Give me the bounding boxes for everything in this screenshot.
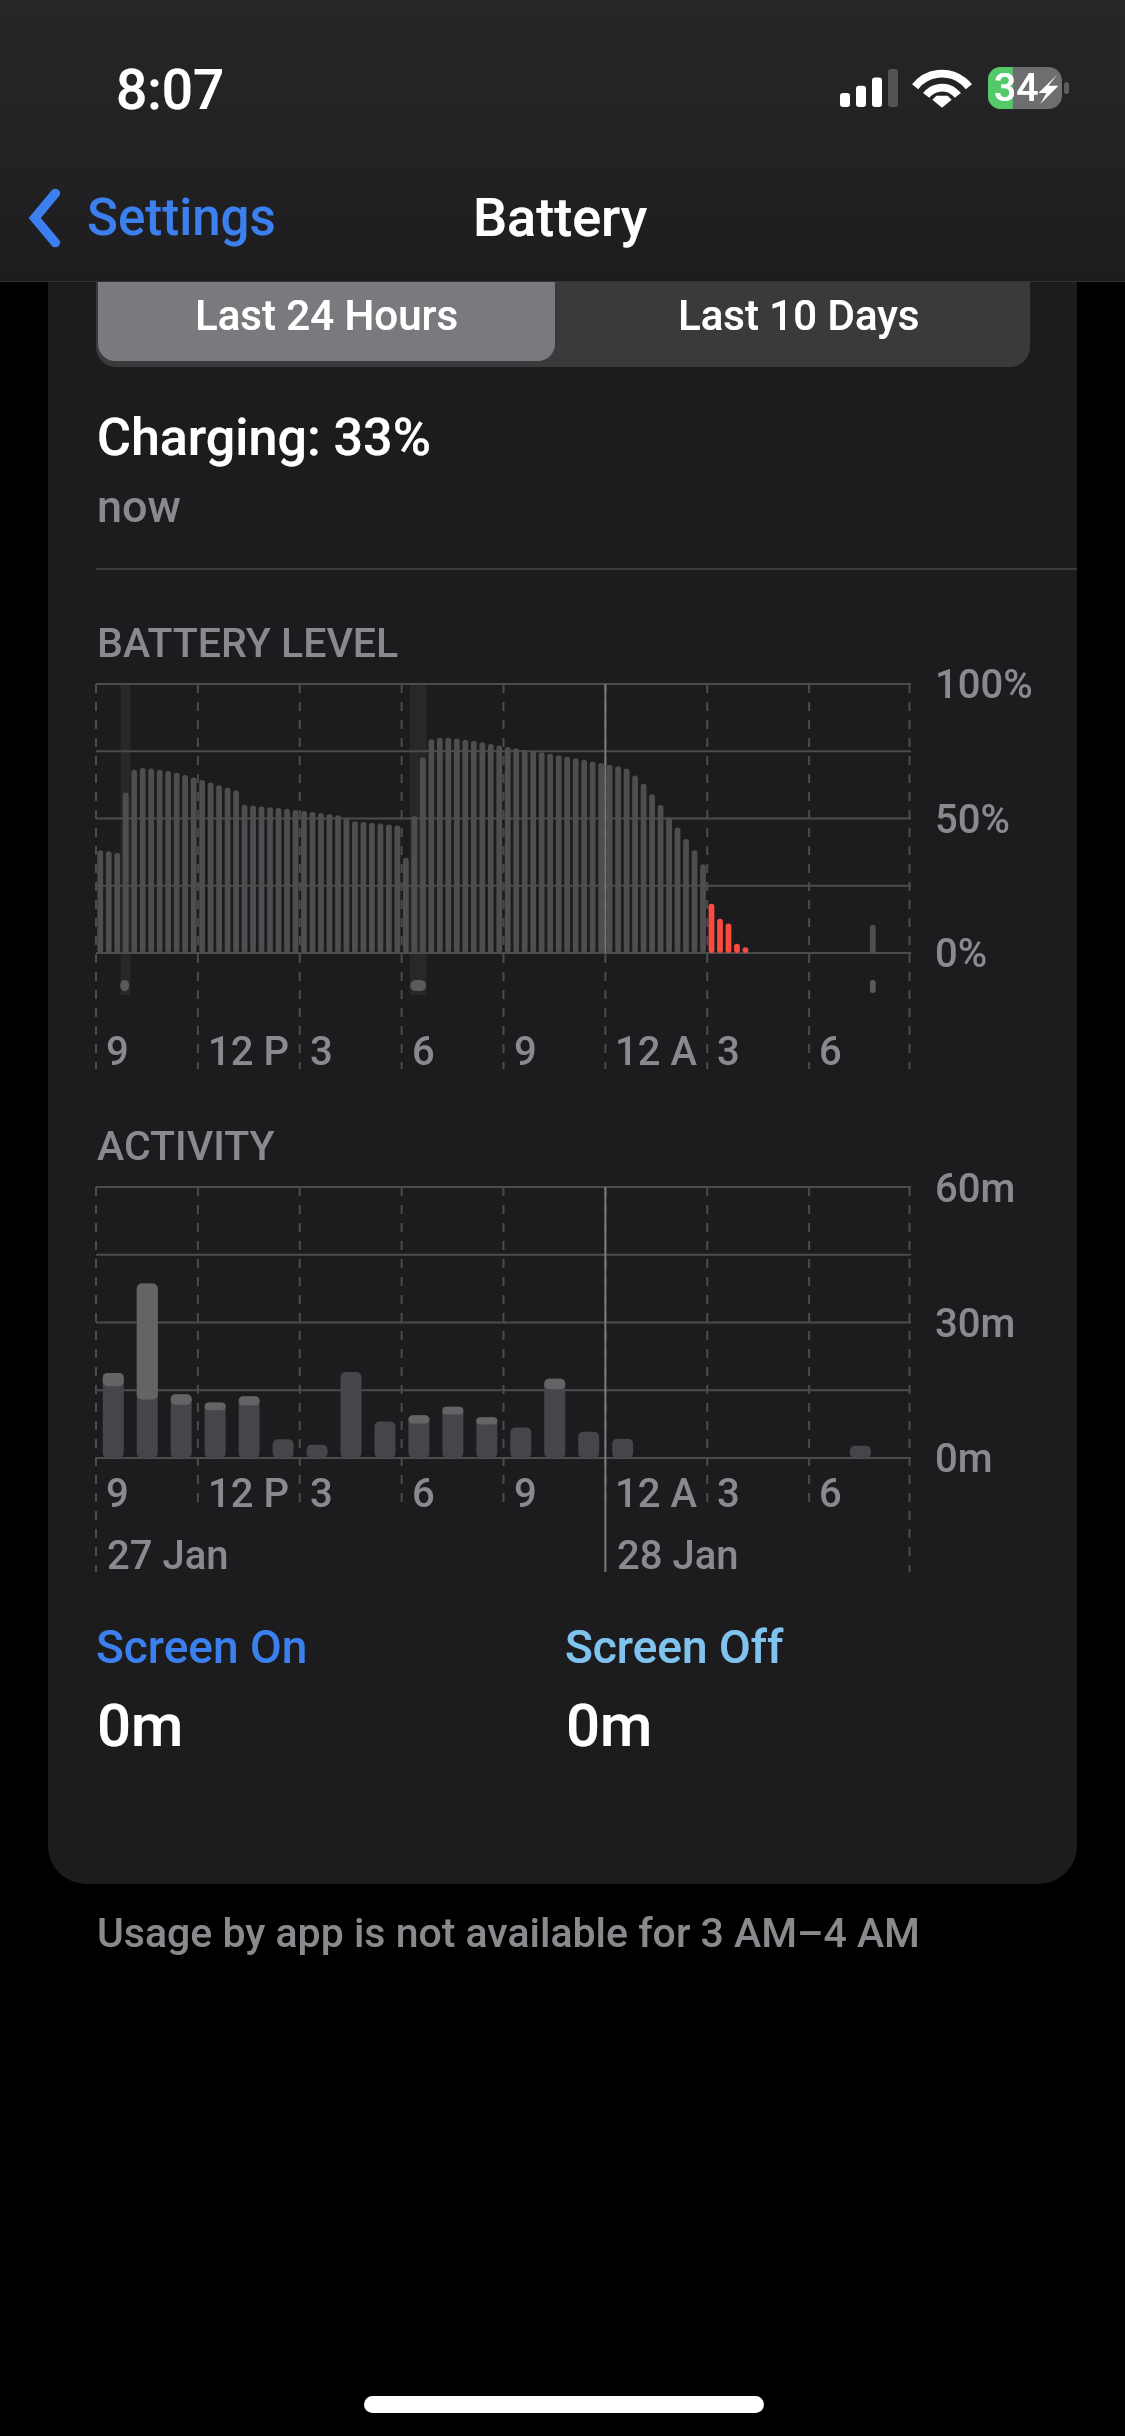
staticText: 9 — [514, 1470, 537, 1517]
staticText: now — [97, 480, 181, 533]
staticText: 3 — [310, 1028, 333, 1075]
staticText: Charging: 33% — [97, 407, 431, 468]
button[interactable]: Settings — [13, 163, 296, 273]
staticText: Last 24 Hours — [195, 291, 458, 340]
staticText: 3 — [717, 1028, 740, 1075]
staticText: BATTERY LEVEL — [97, 619, 399, 667]
staticText: 8:07 — [116, 58, 225, 122]
staticText: 6 — [819, 1028, 842, 1075]
staticText: Usage by app is not available for 3 AM–4… — [97, 1909, 920, 1957]
staticText: Settings — [87, 188, 276, 248]
staticText: 9 — [514, 1028, 537, 1075]
staticText: 12 P — [208, 1470, 289, 1517]
other: Wi-Fi — [916, 68, 968, 107]
staticText: 6 — [412, 1470, 435, 1517]
staticText: 60m — [935, 1165, 1016, 1212]
other: Cellular signal — [840, 69, 898, 107]
button[interactable]: Last 24 Hours — [98, 282, 555, 361]
staticText: 0% — [935, 930, 988, 977]
staticText: 0m — [97, 1690, 184, 1760]
staticText: 6 — [819, 1470, 842, 1517]
staticText: 27 Jan — [107, 1532, 229, 1579]
staticText: 3 — [717, 1470, 740, 1517]
staticText: Last 10 Days — [678, 291, 920, 340]
staticText: 50% — [935, 796, 1010, 843]
staticText: 0m — [935, 1435, 993, 1482]
button[interactable]: Last 10 Days — [570, 282, 1028, 367]
staticText: 9 — [106, 1028, 129, 1075]
other: Battery 34 percent charging — [988, 67, 1069, 109]
staticText: 30m — [935, 1300, 1016, 1347]
staticText: Screen On — [96, 1620, 308, 1674]
staticText: ACTIVITY — [97, 1122, 275, 1170]
staticText: 6 — [412, 1028, 435, 1075]
staticText: 12 A — [615, 1470, 697, 1517]
staticText: 100% — [935, 661, 1033, 708]
staticText: 9 — [106, 1470, 129, 1517]
staticText: 3 — [310, 1470, 333, 1517]
staticText: Screen Off — [565, 1620, 784, 1674]
staticText: 28 Jan — [617, 1532, 739, 1579]
staticText: Battery — [473, 186, 648, 249]
staticText: 12 P — [208, 1028, 289, 1075]
staticText: 34 — [994, 65, 1039, 107]
staticText: 12 A — [615, 1028, 697, 1075]
staticText: 0m — [566, 1690, 653, 1760]
